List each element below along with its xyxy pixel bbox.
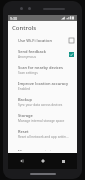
staticText: Sync your data across devices	[18, 103, 63, 107]
staticText: 9:30	[10, 16, 17, 21]
button[interactable]: Storage	[8, 110, 77, 126]
staticText: Reset	[18, 129, 29, 134]
button[interactable]: Backup	[8, 94, 77, 110]
staticText: Scan settings	[18, 71, 38, 75]
button[interactable]: Recent apps	[56, 154, 70, 168]
staticText: Scan for nearby devices	[18, 65, 64, 70]
staticText: Enabled	[18, 87, 31, 91]
staticText: Storage	[18, 113, 33, 118]
button[interactable]: Improve location accuracy	[8, 78, 77, 94]
staticText: Manage permissions	[18, 149, 58, 151]
staticText: Send feedback	[18, 49, 46, 54]
button[interactable]: Reset	[8, 126, 77, 142]
button[interactable]: Toggle option	[69, 38, 74, 43]
staticText: Improve location accuracy	[18, 81, 69, 86]
button[interactable]: Back	[15, 154, 29, 168]
button[interactable]: Send feedback	[8, 46, 77, 62]
staticText: Reset all network and app settings	[18, 135, 69, 139]
staticText: Manage internal storage space	[18, 119, 65, 123]
button[interactable]: Use Wi-Fi location	[8, 35, 77, 46]
staticText: Anonymous	[18, 55, 36, 59]
staticText: Controls	[12, 24, 37, 32]
button[interactable]: Home	[36, 154, 50, 168]
button[interactable]: Manage permissions	[8, 147, 77, 153]
button[interactable]: Scan for nearby devices	[8, 62, 77, 78]
staticText: Backup	[18, 97, 33, 102]
staticText: Use Wi-Fi location	[18, 38, 52, 43]
button[interactable]: Toggle option, checked	[69, 52, 74, 57]
